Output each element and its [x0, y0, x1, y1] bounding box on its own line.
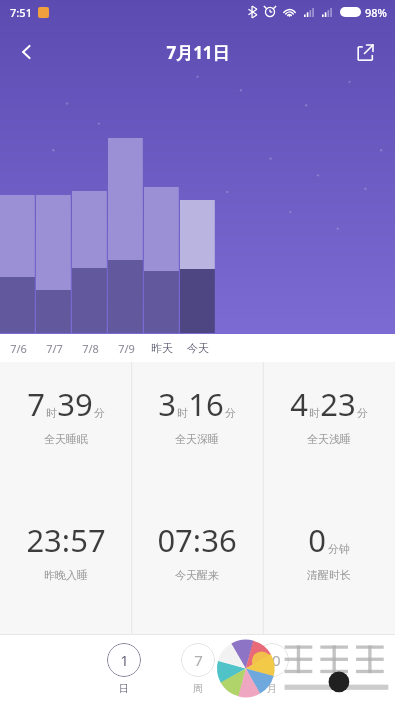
- button[interactable]: 7/7: [36, 334, 72, 362]
- button[interactable]: Back: [4, 29, 50, 75]
- staticText: 清醒时长: [307, 568, 351, 582]
- button[interactable]: 07:36: [131, 498, 263, 635]
- staticText: 23:57: [26, 519, 106, 561]
- button[interactable]: 1: [98, 643, 150, 695]
- staticText: 全天深睡: [175, 432, 219, 446]
- staticText: 时: [177, 406, 188, 420]
- staticText: 今天醒来: [175, 568, 219, 582]
- staticText: 7: [27, 383, 45, 425]
- button[interactable]: 3: [131, 362, 263, 498]
- staticText: 7月11日: [166, 41, 230, 64]
- staticText: 全天睡眠: [44, 432, 88, 446]
- staticText: 0: [308, 519, 326, 561]
- button[interactable]: 7/8: [72, 334, 108, 362]
- button[interactable]: 今天: [180, 334, 216, 362]
- staticText: 昨天: [151, 341, 173, 355]
- staticText: 分: [357, 406, 368, 420]
- button[interactable]: Share: [343, 30, 387, 74]
- staticText: 全天浅睡: [307, 432, 351, 446]
- button[interactable]: 7/9: [108, 334, 144, 362]
- staticText: 周: [193, 682, 203, 695]
- staticText: 时: [309, 406, 320, 420]
- staticText: 分钟: [328, 542, 350, 556]
- staticText: 30: [263, 650, 281, 670]
- button[interactable]: 23:57: [0, 498, 131, 635]
- staticText: 1: [120, 650, 129, 670]
- staticText: 分: [94, 406, 105, 420]
- staticText: 分: [225, 406, 236, 420]
- staticText: 7:51: [10, 5, 32, 20]
- staticText: 98%: [365, 5, 387, 20]
- staticText: 昨晚入睡: [44, 568, 88, 582]
- staticText: 07:36: [157, 519, 237, 561]
- button[interactable]: 0: [263, 498, 395, 635]
- staticText: 7/8: [82, 341, 99, 356]
- button[interactable]: 7: [0, 362, 131, 498]
- button[interactable]: 7/6: [0, 334, 36, 362]
- staticText: 3: [158, 383, 176, 425]
- staticText: 7: [194, 650, 203, 670]
- staticText: 4: [290, 383, 308, 425]
- button[interactable]: 昨天: [144, 334, 180, 362]
- staticText: 7/9: [118, 341, 135, 356]
- staticText: 今天: [187, 341, 209, 355]
- button[interactable]: 30: [246, 643, 298, 695]
- staticText: 23: [320, 383, 356, 425]
- button[interactable]: 7: [172, 643, 224, 695]
- staticText: 7/7: [46, 341, 63, 356]
- staticText: 时: [46, 406, 57, 420]
- staticText: 16: [188, 383, 224, 425]
- button[interactable]: 4: [263, 362, 395, 498]
- staticText: 39: [57, 383, 93, 425]
- staticText: 日: [119, 682, 129, 695]
- staticText: 月: [267, 682, 277, 695]
- staticText: 7/6: [10, 341, 27, 356]
